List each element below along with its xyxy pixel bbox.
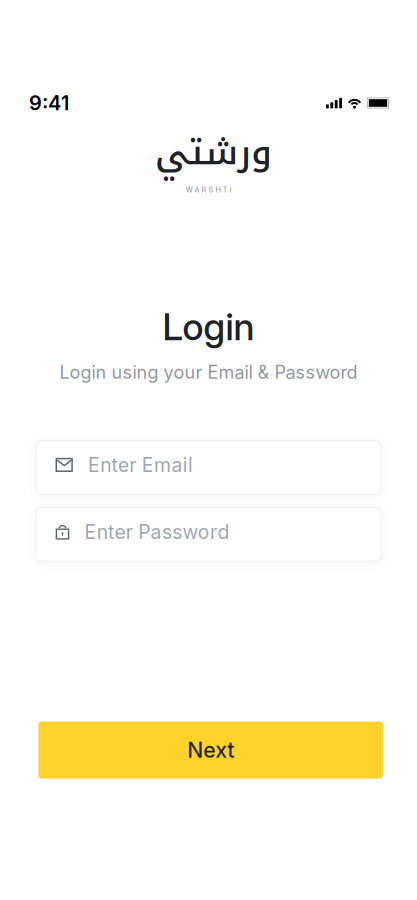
staticText: Enter Email xyxy=(88,453,193,477)
button[interactable]: Next xyxy=(38,722,383,779)
staticText: ورشتي xyxy=(154,118,271,186)
staticText: W A R S H T I xyxy=(185,185,231,194)
staticText: Login xyxy=(162,304,254,349)
staticText: Enter Password xyxy=(84,520,229,544)
button[interactable]: Enter Email xyxy=(35,440,381,495)
staticText: Login using your Email & Password xyxy=(59,361,357,383)
button[interactable]: Enter Password xyxy=(35,507,381,562)
staticText: 9:41 xyxy=(29,91,69,115)
staticText: Next xyxy=(187,737,234,763)
